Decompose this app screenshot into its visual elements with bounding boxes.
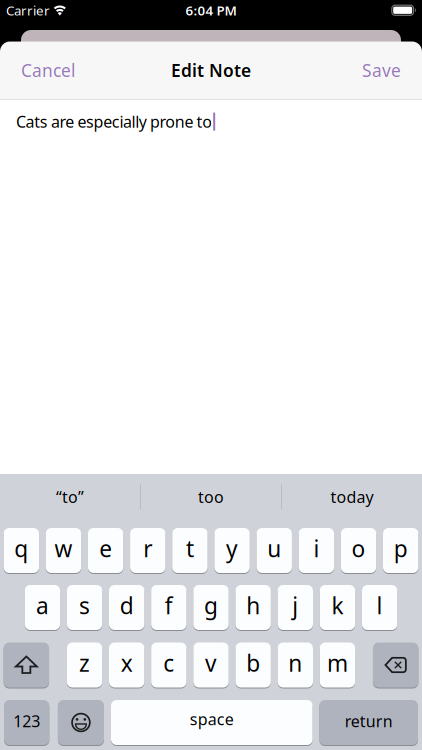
staticText: k [331,590,343,620]
button[interactable]: g [193,585,229,631]
button[interactable]: l [362,585,397,631]
staticText: e [99,533,112,563]
staticText: space [190,708,234,730]
staticText: today [330,486,373,507]
staticText: l [377,590,383,620]
button[interactable]: too [141,474,281,519]
staticText: 123 [13,710,40,732]
staticText: i [313,533,319,563]
staticText: Cats are especially prone to [16,111,212,132]
button[interactable]: x [109,642,144,688]
staticText: n [288,648,302,678]
staticText: return [345,710,393,732]
button[interactable]: o [341,528,376,574]
staticText: u [267,533,281,563]
staticText: Edit Note [171,59,251,82]
button[interactable]: Shift [4,642,49,688]
staticText: 6:04 PM [185,1,236,19]
button[interactable]: space [111,700,313,746]
staticText: Carrier [6,1,50,19]
button[interactable]: k [320,585,355,631]
button[interactable]: m [320,642,355,688]
staticText: f [165,590,173,620]
button[interactable]: w [46,528,81,574]
button[interactable]: d [109,585,144,631]
button[interactable]: f [151,585,187,631]
button[interactable]: u [256,528,292,574]
button[interactable]: n [278,642,313,688]
button[interactable]: “to” [0,474,140,519]
staticText: Cancel [21,59,75,82]
button[interactable]: v [193,642,229,688]
staticText: t [186,533,194,563]
staticText: y [226,533,238,563]
staticText: p [394,533,408,563]
staticText: g [204,590,218,620]
staticText: “to” [56,486,84,507]
staticText: w [54,533,72,563]
button[interactable]: p [383,528,418,574]
button[interactable]: y [214,528,250,574]
button[interactable]: Save [362,59,401,82]
button[interactable]: h [235,585,271,631]
staticText: r [143,533,152,563]
staticText: m [327,648,348,678]
button[interactable]: Emoji [58,700,104,746]
button[interactable]: Cancel [21,59,75,82]
staticText: Save [362,59,401,82]
staticText: c [163,648,174,678]
button[interactable]: j [278,585,313,631]
staticText: b [246,648,260,678]
staticText: z [79,648,90,678]
button[interactable]: e [88,528,123,574]
staticText: too [198,486,224,507]
button[interactable]: Delete [373,642,418,688]
button[interactable]: c [151,642,187,688]
button[interactable]: q [4,528,39,574]
staticText: v [205,648,217,678]
staticText: a [36,590,49,620]
button[interactable]: b [235,642,271,688]
staticText: q [14,533,28,563]
button[interactable]: s [67,585,102,631]
staticText: o [351,533,365,563]
staticText: s [79,590,90,620]
staticText: x [121,648,133,678]
button[interactable]: today [282,474,422,519]
button[interactable]: a [25,585,60,631]
button[interactable]: r [130,528,165,574]
button[interactable]: return [319,700,418,746]
staticText: d [120,590,134,620]
button[interactable]: i [299,528,334,574]
staticText: h [246,590,260,620]
button[interactable]: t [172,528,208,574]
button[interactable]: 123 [4,700,49,746]
staticText: j [292,590,298,620]
button[interactable]: z [67,642,102,688]
